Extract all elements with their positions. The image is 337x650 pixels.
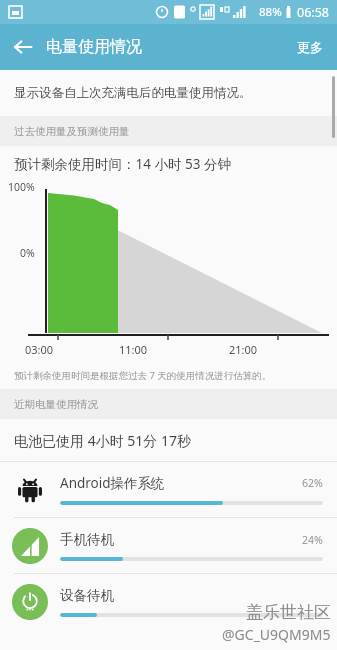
staticText: 21:00 (229, 342, 258, 357)
staticText: 0% (20, 246, 35, 260)
staticText: 手机待机 (60, 531, 302, 548)
staticText: 电池已使用 4小时 51分 17秒 (14, 431, 191, 450)
staticText: 100% (8, 180, 35, 194)
staticText: 24% (302, 533, 323, 547)
staticText: 62% (302, 476, 323, 490)
staticText: 近期电量使用情况 (14, 398, 98, 411)
staticText: 盖乐世社区 (246, 602, 331, 623)
staticText: @GC_U9QM9M5 (222, 625, 331, 644)
button[interactable]: Back (0, 24, 46, 70)
staticText: 03:00 (25, 342, 54, 357)
staticText: 设备待机 (60, 587, 323, 604)
staticText: 预计剩余使用时间：14 小时 53 分钟 (14, 155, 231, 173)
staticText: 预计剩余使用时间是根据您过去 7 天的使用情况进行估算的。 (14, 369, 272, 382)
button[interactable]: 设备待机 (0, 574, 337, 629)
staticText: 更多 (297, 39, 323, 55)
staticText: 电量使用情况 (46, 37, 142, 57)
staticText: 显示设备自上次充满电后的电量使用情况。 (14, 85, 252, 101)
staticText: 06:58 (297, 4, 329, 21)
button[interactable]: 更多 (283, 27, 337, 67)
staticText: 过去使用量及预测使用量 (14, 125, 130, 138)
staticText: 88% (259, 4, 282, 20)
staticText: Android操作系统 (60, 474, 302, 492)
staticText: 11:00 (119, 342, 148, 357)
button[interactable]: 手机待机 (0, 518, 337, 573)
button[interactable]: Android操作系统 (0, 462, 337, 517)
